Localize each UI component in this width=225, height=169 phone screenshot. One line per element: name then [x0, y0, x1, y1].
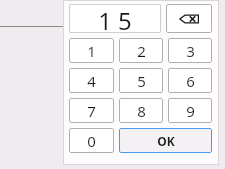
button[interactable]: 7 — [69, 98, 114, 123]
staticText: 8 — [137, 101, 146, 121]
button[interactable]: 3 — [168, 38, 212, 63]
button[interactable]: 1 5 — [69, 4, 161, 33]
staticText: 6 — [186, 71, 195, 91]
staticText: 7 — [87, 101, 96, 121]
staticText: 1 5 — [98, 4, 132, 33]
button[interactable]: 9 — [168, 98, 212, 123]
staticText: 5 — [137, 71, 146, 91]
button[interactable]: 4 — [69, 68, 114, 93]
button[interactable]: Backspace — [166, 4, 212, 33]
button[interactable]: 5 — [119, 68, 163, 93]
staticText: 1 — [87, 41, 96, 61]
staticText: 2 — [137, 41, 146, 61]
button[interactable]: 1 — [69, 38, 114, 63]
staticText: 4 — [87, 71, 96, 91]
button[interactable]: 2 — [119, 38, 163, 63]
button[interactable]: 8 — [119, 98, 163, 123]
button[interactable]: 0 — [69, 128, 114, 153]
staticText: 9 — [186, 101, 195, 121]
staticText: OK — [157, 133, 175, 149]
staticText: 0 — [87, 131, 96, 151]
button[interactable]: 6 — [168, 68, 212, 93]
button[interactable]: OK — [119, 128, 212, 153]
staticText: 3 — [186, 41, 195, 61]
